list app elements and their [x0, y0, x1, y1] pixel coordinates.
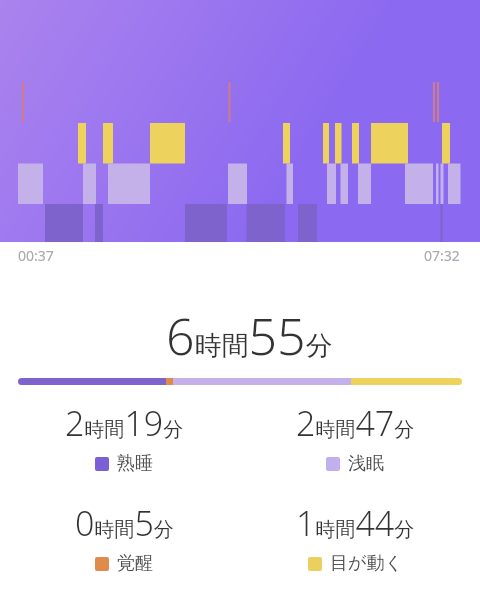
- staticText: 覚醒: [117, 552, 153, 575]
- staticText: 0時間5分: [75, 500, 174, 546]
- button[interactable]: 2時間47分: [235, 400, 475, 475]
- staticText: 2時間47分: [296, 400, 415, 446]
- staticText: 熟睡: [117, 452, 153, 475]
- staticText: 浅眠: [348, 452, 384, 475]
- button[interactable]: 0時間5分: [4, 500, 244, 575]
- button[interactable]: 1時間44分: [235, 500, 475, 575]
- staticText: 2時間19分: [65, 400, 184, 446]
- staticText: 6時間55分: [166, 302, 333, 370]
- button[interactable]: 2時間19分: [4, 400, 244, 475]
- staticText: 00:37: [18, 246, 54, 265]
- staticText: 目が動く: [330, 552, 403, 575]
- staticText: 1時間44分: [296, 500, 415, 546]
- staticText: 07:32: [424, 246, 460, 265]
